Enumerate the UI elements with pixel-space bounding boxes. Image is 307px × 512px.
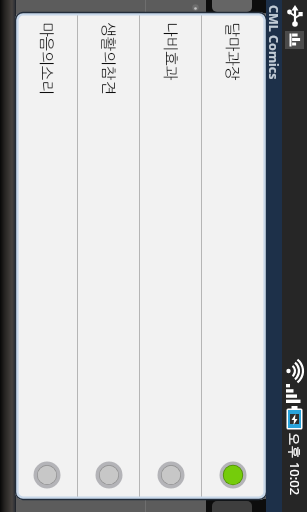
button[interactable]: 달마과장 xyxy=(202,13,264,499)
other: 마음의소리 xyxy=(32,460,62,490)
other: 나비효과 xyxy=(156,460,186,490)
other: USB connected xyxy=(287,5,303,27)
other: 생활의참견 xyxy=(94,460,124,490)
other: Battery charging xyxy=(286,406,303,430)
other: Wi-Fi xyxy=(285,362,305,380)
staticText: 생활의참견 xyxy=(101,22,116,112)
button[interactable]: 나비효과 xyxy=(140,13,202,499)
staticText: 달마과장 xyxy=(225,22,240,112)
staticText: CML Comics xyxy=(266,5,282,85)
staticText: 마음의소리 xyxy=(39,22,54,112)
other: 달마과장 xyxy=(218,460,248,490)
staticText: 나비효과 xyxy=(163,22,178,112)
button[interactable]: 마음의소리 xyxy=(16,13,78,499)
staticText: 오후 10:02 xyxy=(285,432,303,510)
button[interactable]: CML Comics xyxy=(266,0,282,512)
button[interactable]: 생활의참견 xyxy=(78,13,140,499)
